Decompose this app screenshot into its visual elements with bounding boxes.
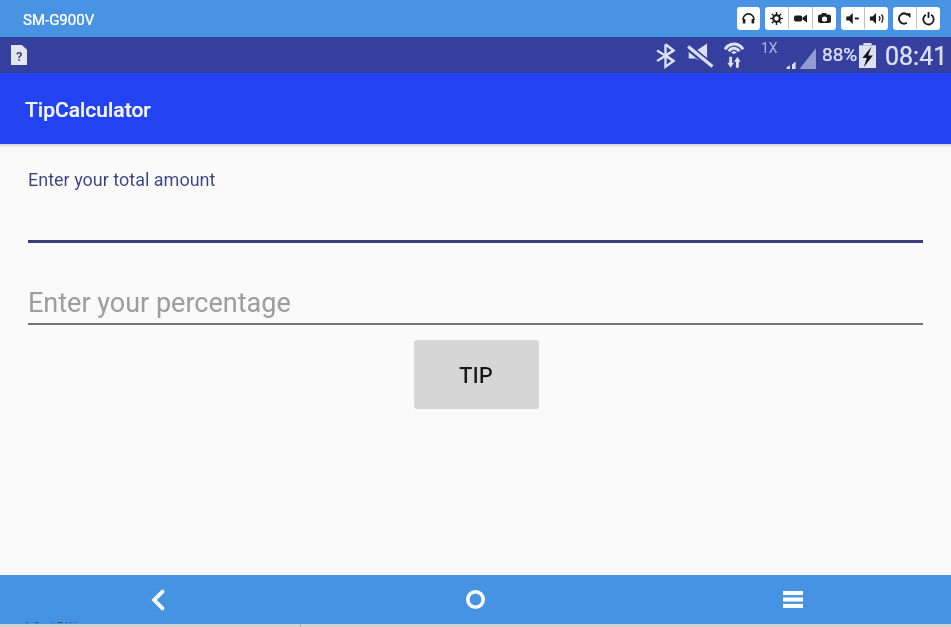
- button[interactable]: Screenshot: [813, 7, 836, 30]
- button[interactable]: Volume down: [841, 7, 864, 30]
- button[interactable]: Rotate: [893, 7, 916, 30]
- button[interactable]: Volume up: [865, 7, 888, 30]
- button[interactable]: Home: [317, 575, 634, 624]
- staticText: 88%: [822, 43, 858, 65]
- staticText: TipCalculator: [25, 98, 151, 123]
- staticText: 1X: [761, 40, 778, 56]
- button[interactable]: Recent apps: [634, 575, 951, 624]
- button[interactable]: Record screen: [789, 7, 812, 30]
- button[interactable]: TIP: [414, 340, 539, 409]
- staticText: Enter your total amount: [28, 169, 216, 190]
- button[interactable]: Back: [0, 575, 317, 624]
- button[interactable]: Enter your percentage: [28, 277, 923, 325]
- button[interactable]: Headphones: [737, 7, 760, 30]
- staticText: SM-G900V: [23, 11, 95, 29]
- staticText: TIP: [459, 363, 493, 389]
- button[interactable]: Power: [917, 7, 940, 30]
- staticText: 08:41: [885, 42, 948, 71]
- staticText: 1 Oxxl PAY: [24, 620, 77, 623]
- staticText: ?: [16, 49, 23, 64]
- button[interactable]: Settings: [765, 7, 788, 30]
- staticText: Enter your percentage: [28, 287, 291, 319]
- button[interactable]: Enter your total amount: [28, 156, 923, 243]
